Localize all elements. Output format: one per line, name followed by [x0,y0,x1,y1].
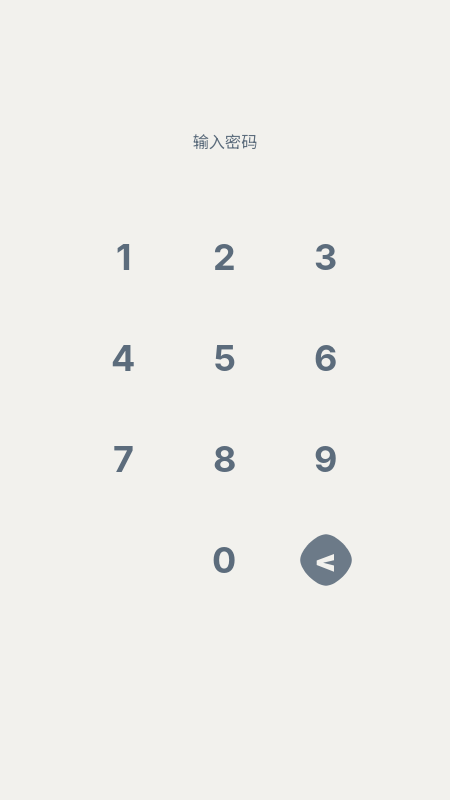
button[interactable]: 3 [275,206,376,307]
staticText: 0 [212,538,237,582]
button[interactable]: 5 [174,307,275,408]
staticText: 2 [213,235,236,279]
staticText: 1 [116,235,132,279]
staticText: 6 [314,336,338,380]
button[interactable]: Delete [275,509,376,610]
staticText: 9 [314,437,338,481]
staticText: 3 [314,235,338,279]
button[interactable]: 4 [73,307,174,408]
staticText: 输入密码 [0,129,450,152]
staticText: 5 [213,336,237,380]
button[interactable]: 9 [275,408,376,509]
button[interactable]: 7 [73,408,174,509]
staticText: 4 [111,336,136,380]
staticText: 8 [213,437,237,481]
button[interactable]: 1 [73,206,174,307]
button[interactable]: 8 [174,408,275,509]
button[interactable]: 0 [174,509,275,610]
staticText: 7 [113,437,134,481]
button[interactable]: 2 [174,206,275,307]
button[interactable]: 6 [275,307,376,408]
